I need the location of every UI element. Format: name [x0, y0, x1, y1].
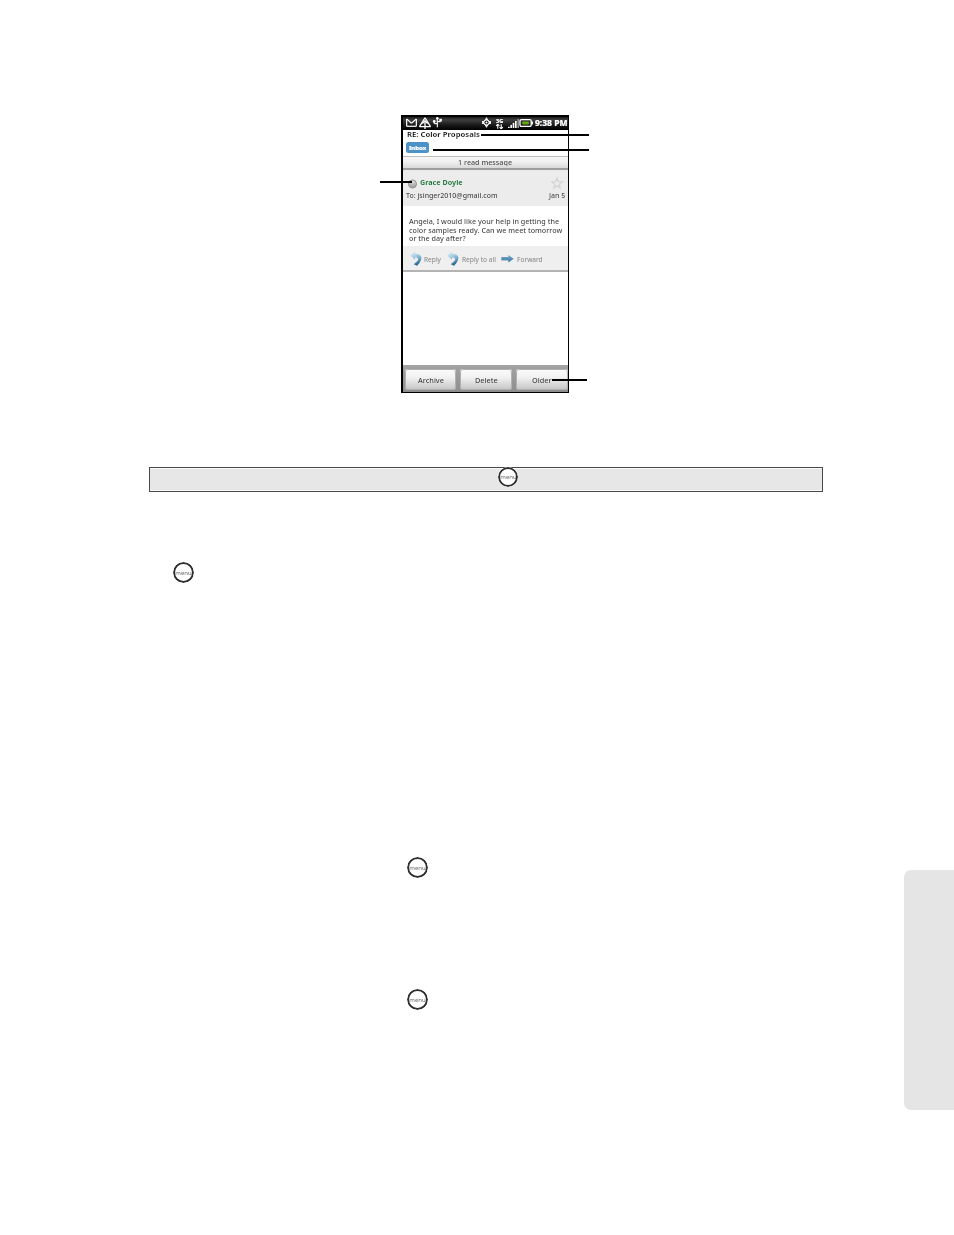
- button[interactable]: 1 read message: [403, 157, 568, 168]
- staticText: To: jsinger2010@gmail.com: [406, 191, 498, 201]
- staticText: Grace Doyle: [420, 177, 463, 187]
- staticText: Reply to all: [462, 255, 496, 264]
- button[interactable]: Menu button: [407, 989, 428, 1010]
- staticText: Jan 5: [549, 191, 566, 201]
- button[interactable]: Menu button: [173, 562, 194, 583]
- staticText: Archive: [418, 375, 444, 385]
- staticText: Older: [532, 375, 552, 385]
- button[interactable]: Forward: [501, 250, 540, 267]
- staticText: Forward: [517, 255, 543, 264]
- staticText: Inbox: [409, 144, 427, 152]
- button[interactable]: Delete: [460, 369, 512, 390]
- button[interactable]: Reply to all: [446, 250, 493, 267]
- button[interactable]: Message from Grace Doyle, Jan 5: [403, 170, 568, 206]
- staticText: menu: [500, 473, 517, 481]
- staticText: color samples ready. Can we meet tomorro…: [409, 225, 563, 235]
- staticText: 3G: [496, 117, 504, 124]
- staticText: 1 read message: [458, 157, 513, 166]
- staticText: Delete: [475, 375, 498, 385]
- staticText: menu: [175, 569, 192, 577]
- button[interactable]: Inbox: [406, 142, 429, 153]
- staticText: Reply: [424, 255, 441, 264]
- button[interactable]: Older: [516, 369, 568, 390]
- staticText: or the day after?: [409, 233, 466, 243]
- staticText: menu: [409, 864, 426, 872]
- staticText: 9:38 PM: [535, 117, 568, 129]
- button[interactable]: Menu button: [407, 857, 428, 878]
- staticText: menu: [409, 996, 426, 1004]
- button[interactable]: Reply: [409, 250, 440, 267]
- button[interactable]: Star message: [551, 177, 563, 189]
- button[interactable]: Menu button: [498, 467, 518, 487]
- staticText: RE: Color Proposals: [407, 129, 480, 139]
- staticText: Angela, I would like your help in gettin…: [409, 216, 560, 226]
- button[interactable]: Archive: [405, 369, 456, 390]
